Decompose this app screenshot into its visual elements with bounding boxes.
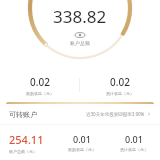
staticText: 可转账户	[9, 110, 37, 119]
staticText: 累计收益（元）	[120, 147, 148, 152]
button[interactable]: Hide balance	[75, 32, 85, 38]
staticText: 0.02	[110, 75, 130, 89]
staticText: 最新收益（元）	[26, 91, 54, 96]
staticText: 0.02	[30, 75, 50, 89]
button[interactable]: 0.02	[0, 70, 79, 100]
staticText: 累计收益（元）	[106, 91, 134, 96]
staticText: 0.01	[73, 133, 91, 145]
staticText: 账户总额	[70, 40, 90, 46]
staticText: 账户总额（元）	[9, 149, 37, 154]
staticText: 254.11	[9, 132, 44, 147]
button[interactable]: 0.02	[80, 70, 160, 100]
staticText: 0.01	[125, 133, 143, 145]
staticText: 近30天年化投资回报率3.90%	[86, 111, 145, 117]
staticText: 338.82	[53, 5, 107, 28]
staticText: 最新收益（元）	[68, 147, 96, 152]
button[interactable]: 可转账户	[0, 104, 160, 160]
